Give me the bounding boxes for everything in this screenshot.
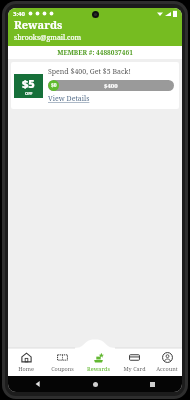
staticText: 3:40: [13, 10, 25, 18]
button[interactable]: $5: [11, 62, 179, 109]
button[interactable]: Coupons: [44, 348, 80, 376]
button[interactable]: Back: [34, 380, 42, 388]
other: My Card: [129, 352, 140, 363]
staticText: $0: [51, 82, 57, 89]
staticText: Home: [18, 365, 34, 372]
button[interactable]: My Card: [116, 348, 152, 376]
staticText: Coupons: [51, 365, 74, 372]
other: Rewards: [93, 352, 104, 363]
button[interactable]: Home: [91, 380, 99, 388]
staticText: sbrooks@gmail.com: [14, 33, 82, 43]
button[interactable]: Recent apps: [148, 380, 156, 388]
staticText: $400: [104, 82, 118, 90]
staticText: MEMBER #: 4488037461: [57, 48, 133, 57]
staticText: Rewards: [14, 17, 63, 32]
button[interactable]: Home: [8, 348, 44, 376]
other: Account: [162, 352, 173, 363]
staticText: Spend $400, Get $5 Back!: [48, 67, 131, 77]
staticText: My Card: [123, 365, 146, 372]
button[interactable]: View Details: [48, 94, 90, 104]
staticText: Account: [156, 365, 178, 372]
staticText: $5: [22, 76, 35, 91]
staticText: OFF: [25, 91, 33, 96]
button[interactable]: Rewards: [80, 348, 116, 376]
button[interactable]: Account: [152, 348, 182, 376]
other: Home: [21, 352, 32, 363]
other: Coupons: [57, 352, 68, 363]
staticText: Rewards: [87, 365, 110, 372]
